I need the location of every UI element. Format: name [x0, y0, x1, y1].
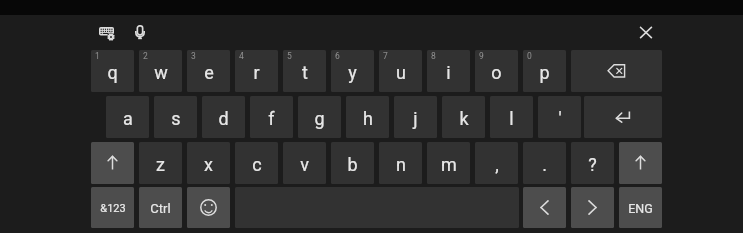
staticText: 7: [383, 51, 388, 61]
button[interactable]: 0: [523, 50, 566, 92]
button[interactable]: Move cursor right: [571, 187, 614, 228]
staticText: 4: [239, 51, 244, 61]
button[interactable]: Enter: [584, 96, 662, 138]
button[interactable]: n: [379, 142, 422, 184]
staticText: v: [300, 154, 309, 175]
staticText: z: [156, 154, 165, 175]
staticText: ?: [588, 154, 597, 175]
staticText: 3: [191, 51, 196, 61]
button[interactable]: Close keyboard: [634, 21, 658, 44]
button[interactable]: z: [139, 142, 182, 184]
button[interactable]: 6: [331, 50, 374, 92]
button[interactable]: 1: [91, 50, 134, 92]
button[interactable]: 4: [235, 50, 278, 92]
staticText: r: [253, 62, 260, 83]
button[interactable]: ?: [571, 142, 614, 184]
staticText: t: [302, 62, 308, 83]
staticText: 1: [95, 51, 100, 61]
button[interactable]: Keyboard settings: [99, 27, 117, 43]
staticText: k: [459, 108, 469, 129]
button[interactable]: v: [283, 142, 326, 184]
button[interactable]: s: [154, 96, 197, 138]
button[interactable]: Move cursor left: [523, 187, 566, 228]
staticText: 9: [479, 51, 484, 61]
button[interactable]: l: [490, 96, 533, 138]
staticText: l: [509, 108, 514, 129]
button[interactable]: 9: [475, 50, 518, 92]
button[interactable]: 7: [379, 50, 422, 92]
staticText: ,: [495, 154, 499, 175]
staticText: 6: [335, 51, 340, 61]
staticText: w: [154, 62, 168, 83]
staticText: o: [491, 62, 502, 83]
button[interactable]: h: [346, 96, 389, 138]
button[interactable]: 5: [283, 50, 326, 92]
staticText: q: [107, 62, 118, 83]
staticText: ': [558, 108, 562, 129]
staticText: j: [413, 108, 418, 129]
button[interactable]: 8: [427, 50, 470, 92]
button[interactable]: a: [106, 96, 149, 138]
staticText: 2: [143, 51, 148, 61]
button[interactable]: d: [202, 96, 245, 138]
staticText: s: [171, 108, 181, 129]
button[interactable]: c: [235, 142, 278, 184]
staticText: .: [542, 154, 547, 175]
staticText: b: [347, 154, 358, 175]
button[interactable]: j: [394, 96, 437, 138]
staticText: a: [123, 108, 133, 129]
button[interactable]: f: [250, 96, 293, 138]
button[interactable]: Shift: [91, 142, 134, 184]
staticText: x: [204, 154, 213, 175]
staticText: 8: [431, 51, 436, 61]
staticText: m: [441, 154, 457, 175]
button[interactable]: &123: [91, 187, 134, 228]
staticText: n: [396, 154, 406, 175]
staticText: &123: [100, 202, 126, 215]
staticText: e: [204, 62, 214, 83]
button[interactable]: .: [523, 142, 566, 184]
staticText: ENG: [628, 201, 653, 216]
button[interactable]: ENG: [619, 187, 662, 228]
button[interactable]: Voice input: [135, 25, 146, 40]
button[interactable]: m: [427, 142, 470, 184]
button[interactable]: Ctrl: [139, 187, 182, 228]
button[interactable]: x: [187, 142, 230, 184]
staticText: 0: [527, 51, 532, 61]
staticText: d: [218, 108, 229, 129]
staticText: c: [252, 154, 262, 175]
button[interactable]: g: [298, 96, 341, 138]
button[interactable]: 2: [139, 50, 182, 92]
button[interactable]: 3: [187, 50, 230, 92]
staticText: y: [348, 62, 357, 83]
staticText: h: [363, 108, 373, 129]
button[interactable]: k: [442, 96, 485, 138]
staticText: 5: [287, 51, 292, 61]
button[interactable]: b: [331, 142, 374, 184]
staticText: g: [314, 108, 325, 129]
staticText: u: [396, 62, 406, 83]
button[interactable]: Shift: [619, 142, 662, 184]
staticText: Ctrl: [150, 201, 171, 216]
button[interactable]: Backspace: [571, 50, 662, 92]
button[interactable]: ,: [475, 142, 518, 184]
staticText: f: [268, 108, 275, 129]
staticText: i: [446, 62, 451, 83]
button[interactable]: ': [538, 96, 581, 138]
staticText: p: [539, 62, 550, 83]
button[interactable]: Emoji: [187, 187, 230, 228]
